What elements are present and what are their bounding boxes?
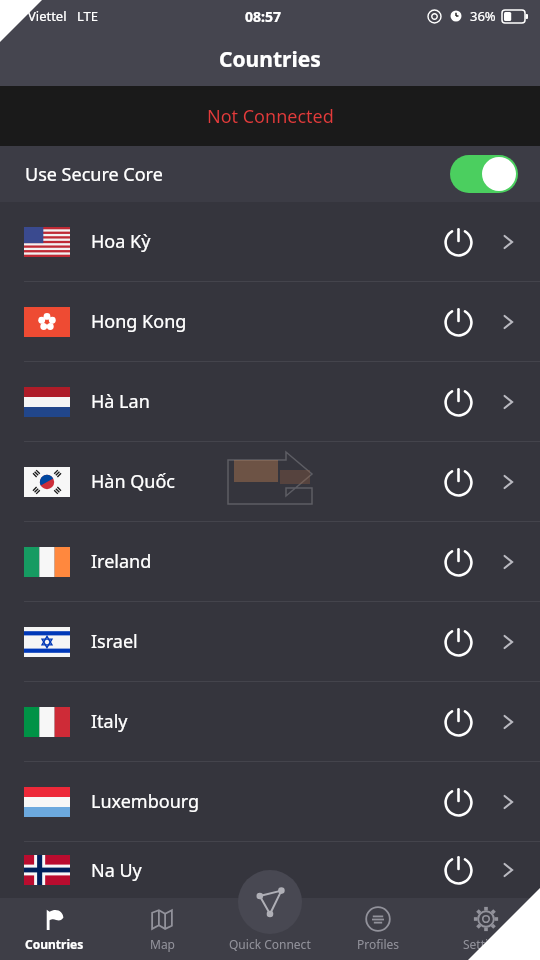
button[interactable]: Open Ireland [488, 542, 528, 582]
staticText: Israel [91, 629, 138, 654]
staticText: Ireland [91, 549, 152, 574]
button[interactable]: Connect to Hoa Kỳ [434, 218, 482, 266]
staticText: 36% [470, 7, 496, 25]
button[interactable]: Italy [0, 682, 540, 761]
staticText: 08:57 [245, 7, 281, 26]
button[interactable]: Use Secure Core [0, 146, 540, 202]
button[interactable]: Open Israel [488, 622, 528, 662]
staticText: Viettel [28, 7, 67, 25]
button[interactable]: Connect to Luxembourg [434, 778, 482, 826]
staticText: Luxembourg [91, 789, 200, 814]
button[interactable]: Open Luxembourg [488, 782, 528, 822]
staticText: Hàn Quốc [91, 469, 175, 494]
button[interactable]: Connect to Israel [434, 618, 482, 666]
staticText: Hà Lan [91, 389, 150, 414]
button[interactable]: Open Hàn Quốc [488, 462, 528, 502]
staticText: Na Uy [91, 858, 142, 883]
button[interactable]: Connect to Italy [434, 698, 482, 746]
staticText: Settings [463, 936, 509, 952]
button[interactable]: Open Na Uy [488, 850, 528, 890]
button[interactable]: Luxembourg [0, 762, 540, 841]
staticText: Countries [219, 45, 321, 74]
button[interactable]: Connect to Na Uy [434, 846, 482, 894]
staticText: Hoa Kỳ [91, 229, 151, 254]
button[interactable]: Quick Connect [216, 898, 324, 960]
staticText: Hong Kong [91, 309, 187, 334]
button[interactable]: Hà Lan [0, 362, 540, 441]
button[interactable]: Settings [432, 898, 540, 960]
button[interactable]: Connect to Hà Lan [434, 378, 482, 426]
button[interactable]: Connect to Hong Kong [434, 298, 482, 346]
button[interactable]: Use Secure Core toggle [450, 155, 518, 193]
button[interactable]: Map [108, 898, 216, 960]
button[interactable]: Hong Kong [0, 282, 540, 361]
staticText: Quick Connect [229, 936, 311, 952]
staticText: Italy [91, 709, 128, 734]
staticText: Countries [25, 936, 84, 952]
button[interactable]: Open Hà Lan [488, 382, 528, 422]
button[interactable]: Connect to Ireland [434, 538, 482, 586]
button[interactable]: Na Uy [0, 842, 540, 898]
staticText: Map [150, 936, 175, 952]
button[interactable]: Ireland [0, 522, 540, 601]
staticText: Profiles [357, 936, 400, 952]
button[interactable]: Quick Connect [238, 870, 302, 934]
staticText: LTE [77, 7, 99, 25]
button[interactable]: Open Hong Kong [488, 302, 528, 342]
button[interactable]: Countries [0, 898, 108, 960]
button[interactable]: Profiles [324, 898, 432, 960]
button[interactable]: Open Italy [488, 702, 528, 742]
button[interactable]: Connect to Hàn Quốc [434, 458, 482, 506]
button[interactable]: Israel [0, 602, 540, 681]
staticText: Not Connected [207, 104, 334, 129]
button[interactable]: Hoa Kỳ [0, 202, 540, 281]
button[interactable]: Open Hoa Kỳ [488, 222, 528, 262]
button[interactable]: Hàn Quốc [0, 442, 540, 521]
staticText: Use Secure Core [25, 162, 163, 187]
